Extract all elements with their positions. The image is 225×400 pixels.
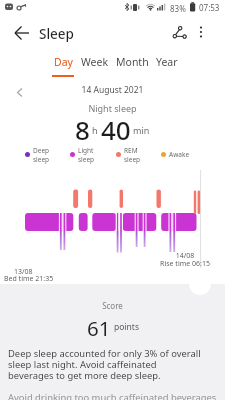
staticText: Awake — [169, 150, 190, 159]
button[interactable]: Deep — [25, 146, 42, 164]
button[interactable]: Month — [116, 55, 149, 77]
staticText: 14 August 2021 — [0, 84, 225, 96]
staticText: REM — [124, 146, 138, 155]
staticText: Month — [116, 55, 149, 69]
button[interactable] — [16, 87, 24, 98]
button[interactable]: Awake — [161, 146, 182, 164]
staticText: Deep sleep accounted for only 3% of over… — [8, 347, 223, 382]
button[interactable] — [196, 24, 206, 40]
staticText: sleep — [124, 155, 141, 164]
staticText: 61 — [87, 314, 111, 336]
button[interactable] — [171, 24, 187, 40]
staticText: Sleep — [39, 25, 74, 43]
button[interactable] — [14, 25, 30, 41]
staticText: Year — [156, 55, 178, 69]
staticText: Night sleep — [0, 102, 225, 114]
staticText: Deep — [33, 146, 50, 155]
staticText: min — [133, 124, 150, 136]
staticText: 14/08 — [165, 251, 205, 261]
staticText: 07:53 — [199, 2, 220, 13]
staticText: Score — [0, 300, 225, 311]
button[interactable]: Light — [70, 146, 87, 164]
button[interactable]: REM — [116, 146, 133, 164]
button[interactable]: Day — [52, 55, 74, 77]
staticText: 13/08 — [14, 267, 33, 277]
staticText: sleep — [33, 155, 50, 164]
staticText: 40 — [101, 112, 131, 140]
staticText: Light — [78, 146, 94, 155]
staticText: Bed time 21:35 — [4, 274, 54, 284]
staticText: points — [114, 321, 139, 333]
staticText: h — [92, 124, 98, 136]
staticText: Rise time 06:15 — [155, 259, 215, 269]
staticText: 8 — [75, 112, 90, 140]
staticText: Day — [54, 55, 73, 69]
button[interactable]: Week — [81, 55, 109, 77]
staticText: 83% — [170, 3, 186, 14]
staticText: Week — [81, 55, 109, 69]
staticText: sleep — [78, 155, 95, 164]
staticText: Avoid drinking too much caffeinated beve… — [8, 391, 223, 400]
button[interactable]: Year — [156, 55, 178, 77]
